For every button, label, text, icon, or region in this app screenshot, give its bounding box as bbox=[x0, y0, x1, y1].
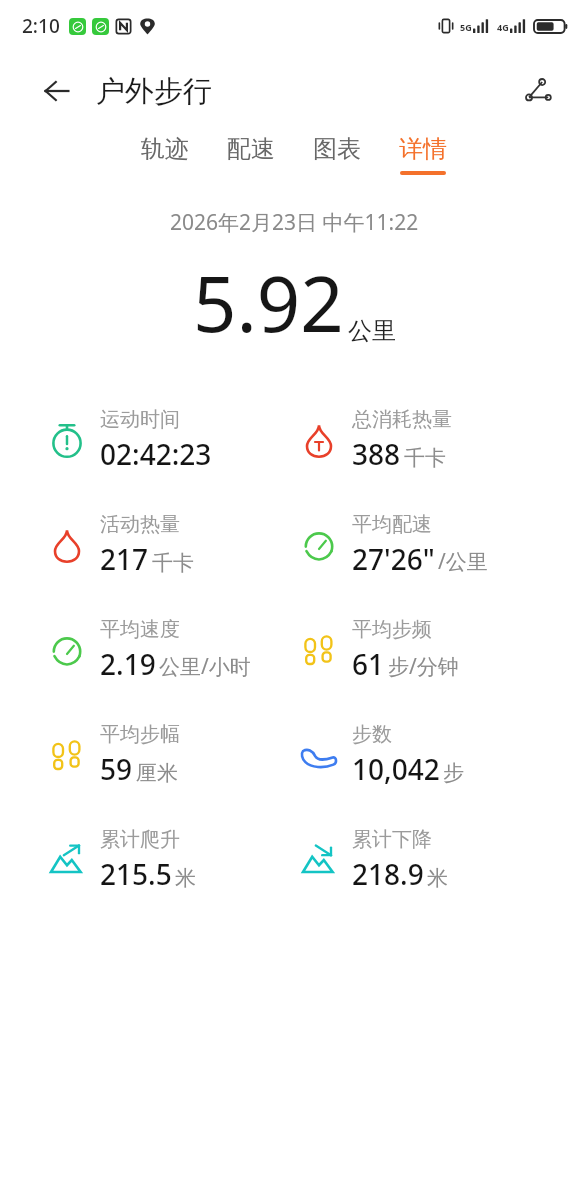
button[interactable]: Share bbox=[514, 67, 562, 115]
staticText: 2026年2月23日 中午11:22 bbox=[170, 208, 419, 237]
staticText: 218.9 bbox=[352, 855, 424, 893]
button[interactable]: 总消耗热量 bbox=[296, 387, 588, 492]
staticText: 平均步频 bbox=[352, 617, 432, 642]
staticText: 千卡 bbox=[404, 445, 446, 471]
staticText: 步/分钟 bbox=[388, 652, 459, 681]
staticText: 平均速度 bbox=[100, 617, 180, 642]
button[interactable]: 平均配速 bbox=[296, 492, 588, 597]
staticText: 平均步幅 bbox=[100, 722, 180, 747]
staticText: 配速 bbox=[227, 134, 275, 164]
button[interactable]: 累计爬升 bbox=[44, 807, 294, 912]
staticText: 总消耗热量 bbox=[352, 407, 452, 432]
staticText: 61 bbox=[352, 645, 385, 683]
staticText: 4G bbox=[497, 21, 509, 33]
button[interactable]: 累计下降 bbox=[296, 807, 588, 912]
staticText: 轨迹 bbox=[141, 134, 189, 164]
staticText: 388 bbox=[352, 435, 401, 473]
button[interactable]: Back bbox=[34, 68, 80, 114]
staticText: 5G bbox=[460, 21, 472, 33]
staticText: 215.5 bbox=[100, 855, 172, 893]
button[interactable]: 运动时间 bbox=[44, 387, 294, 492]
button[interactable]: 活动热量 bbox=[44, 492, 294, 597]
button[interactable]: 配速 bbox=[208, 130, 294, 175]
staticText: 累计下降 bbox=[352, 827, 432, 852]
staticText: 千卡 bbox=[152, 550, 194, 576]
button[interactable]: 轨迹 bbox=[122, 130, 208, 175]
staticText: 详情 bbox=[399, 134, 447, 164]
button[interactable]: 平均步频 bbox=[296, 597, 588, 702]
staticText: 活动热量 bbox=[100, 512, 180, 537]
button[interactable]: 步数 bbox=[296, 702, 588, 807]
staticText: 米 bbox=[427, 865, 448, 891]
staticText: /公里 bbox=[438, 547, 488, 576]
button[interactable]: 平均速度 bbox=[44, 597, 294, 702]
staticText: 步数 bbox=[352, 722, 392, 747]
staticText: 10,042 bbox=[352, 750, 440, 788]
staticText: 27'26" bbox=[352, 540, 435, 578]
staticText: 217 bbox=[100, 540, 149, 578]
staticText: 户外步行 bbox=[96, 73, 212, 110]
staticText: 公里/小时 bbox=[159, 652, 251, 681]
staticText: 步 bbox=[443, 760, 464, 786]
staticText: 厘米 bbox=[136, 760, 178, 786]
button[interactable]: 图表 bbox=[294, 130, 380, 175]
staticText: 02:42:23 bbox=[100, 435, 212, 473]
staticText: 运动时间 bbox=[100, 407, 180, 432]
staticText: 累计爬升 bbox=[100, 827, 180, 852]
staticText: 5.92 bbox=[193, 251, 344, 355]
staticText: 平均配速 bbox=[352, 512, 432, 537]
staticText: 公里 bbox=[348, 316, 396, 346]
staticText: 米 bbox=[175, 865, 196, 891]
button[interactable]: 平均步幅 bbox=[44, 702, 294, 807]
button[interactable]: 详情 bbox=[380, 130, 466, 179]
staticText: 图表 bbox=[313, 134, 361, 164]
staticText: 2:10 bbox=[22, 13, 60, 39]
staticText: 59 bbox=[100, 750, 133, 788]
staticText: 2.19 bbox=[100, 645, 156, 683]
